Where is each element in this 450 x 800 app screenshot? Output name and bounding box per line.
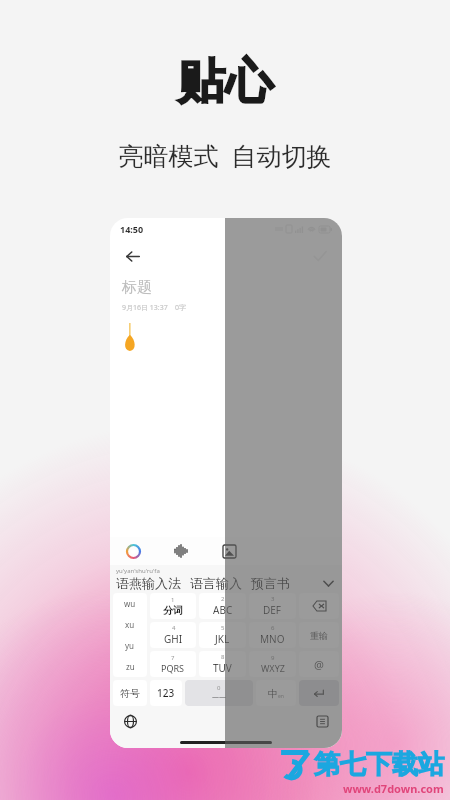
staticText: 标题 xyxy=(122,278,152,297)
staticText: GHI xyxy=(164,632,183,646)
button[interactable]: 语燕输入法 xyxy=(116,575,181,591)
staticText: xu xyxy=(125,619,135,630)
staticText: 4 xyxy=(172,624,176,632)
staticText: 8 xyxy=(221,653,225,661)
button[interactable]: 7 xyxy=(150,651,196,677)
staticText: 7 xyxy=(171,654,175,662)
staticText: 3 xyxy=(271,595,275,603)
staticText: TUV xyxy=(213,661,232,675)
button[interactable]: 5 xyxy=(199,622,246,648)
button[interactable]: Switch language xyxy=(120,711,140,731)
button[interactable]: wu xyxy=(113,593,147,677)
button[interactable] xyxy=(299,593,339,619)
button[interactable]: 预言书 xyxy=(251,575,290,591)
staticText: www.d7down.com xyxy=(343,781,444,796)
staticText: 6 xyxy=(271,624,275,632)
staticText: 9月16日 13:37 0字 xyxy=(122,303,187,313)
staticText: 2 xyxy=(221,595,225,603)
button[interactable]: 6 xyxy=(249,622,296,648)
button[interactable]: 2 xyxy=(199,593,246,619)
staticText: WXYZ xyxy=(261,662,285,674)
button[interactable]: Back xyxy=(120,244,144,268)
staticText: wu xyxy=(124,598,136,609)
button[interactable]: 中 xyxy=(256,680,296,706)
staticText: 14:50 xyxy=(120,223,144,235)
button[interactable]: 语言输入 xyxy=(190,575,242,591)
staticText: 123 xyxy=(157,686,175,700)
staticText: 9 xyxy=(271,654,275,662)
button[interactable]: Voice input xyxy=(122,540,144,562)
staticText: 亮暗模式 自动切换 xyxy=(118,138,332,172)
button[interactable]: 4 xyxy=(150,622,196,648)
staticText: 符号 xyxy=(120,687,140,700)
staticText: en xyxy=(278,693,284,700)
button[interactable]: 重输 xyxy=(299,622,339,648)
button[interactable]: Waveform xyxy=(170,540,192,562)
button[interactable]: Clipboard xyxy=(312,711,332,731)
staticText: yu xyxy=(125,640,135,651)
staticText: 重输 xyxy=(310,630,328,641)
staticText: 第七下载站 xyxy=(314,748,444,781)
button[interactable] xyxy=(299,680,339,706)
staticText: yu'yan'shu'ru'fa xyxy=(116,567,160,575)
button[interactable]: Insert image xyxy=(218,540,240,562)
button[interactable]: 1 xyxy=(150,593,196,619)
button[interactable]: 123 xyxy=(150,680,182,706)
staticText: —— xyxy=(212,692,226,702)
staticText: 中 xyxy=(268,687,278,700)
staticText: JKL xyxy=(215,632,230,646)
button[interactable]: 3 xyxy=(249,593,296,619)
staticText: 贴心 xyxy=(177,52,273,112)
button[interactable]: @ xyxy=(299,651,339,677)
staticText: PQRS xyxy=(161,662,185,674)
staticText: 1 xyxy=(171,596,175,604)
button[interactable]: 9 xyxy=(249,651,296,677)
button[interactable]: 0 xyxy=(185,680,253,706)
staticText: zu xyxy=(126,661,135,672)
staticText: DEF xyxy=(263,603,282,617)
button[interactable]: Expand candidates xyxy=(320,575,336,591)
button[interactable]: 符号 xyxy=(113,680,147,706)
staticText: ABC xyxy=(213,603,233,617)
button[interactable]: 8 xyxy=(199,651,246,677)
staticText: @ xyxy=(314,657,324,672)
staticText: MNO xyxy=(260,632,285,646)
staticText: 0 xyxy=(217,684,221,692)
staticText: 分词 xyxy=(163,604,183,617)
staticText: 5 xyxy=(221,624,225,632)
